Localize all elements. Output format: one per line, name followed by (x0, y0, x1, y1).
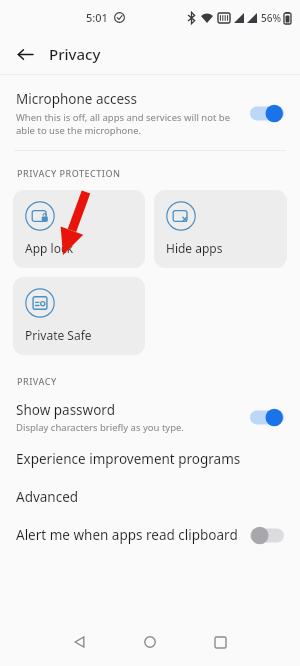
button[interactable]: Hide apps (154, 190, 287, 268)
staticText: When this is off, all apps and services … (16, 111, 240, 137)
staticText: Alert me when apps read clipboard (16, 526, 240, 544)
button[interactable]: On (250, 408, 284, 427)
staticText: Display characters briefly as you type. (16, 421, 184, 434)
button[interactable]: Advanced (0, 478, 300, 516)
staticText: Advanced (16, 488, 79, 506)
button[interactable]: Home (127, 619, 173, 665)
staticText: Experience improvement programs (16, 450, 241, 468)
staticText: PRIVACY PROTECTION (17, 167, 121, 179)
staticText: 56% (261, 11, 281, 25)
button[interactable]: Show password (0, 395, 300, 440)
staticText: Hide apps (166, 240, 223, 256)
staticText: PRIVACY (17, 375, 57, 387)
button[interactable]: Recent apps (197, 619, 243, 665)
button[interactable]: App lock (13, 190, 145, 268)
staticText: Private Safe (25, 327, 92, 343)
button[interactable]: Back (57, 619, 103, 665)
button[interactable]: Microphone access (0, 87, 300, 140)
staticText: Show password (16, 401, 115, 419)
button[interactable]: Experience improvement programs (0, 440, 300, 478)
button[interactable]: Off (250, 526, 284, 545)
button[interactable]: Private Safe (13, 277, 145, 355)
button[interactable]: Back (10, 39, 40, 69)
staticText: Privacy (49, 44, 101, 64)
staticText: Microphone access (16, 90, 138, 108)
button[interactable]: Alert me when apps read clipboard (0, 516, 300, 554)
button[interactable]: On (250, 104, 284, 123)
staticText: App lock (25, 240, 74, 256)
staticText: 5:01 (86, 10, 108, 25)
